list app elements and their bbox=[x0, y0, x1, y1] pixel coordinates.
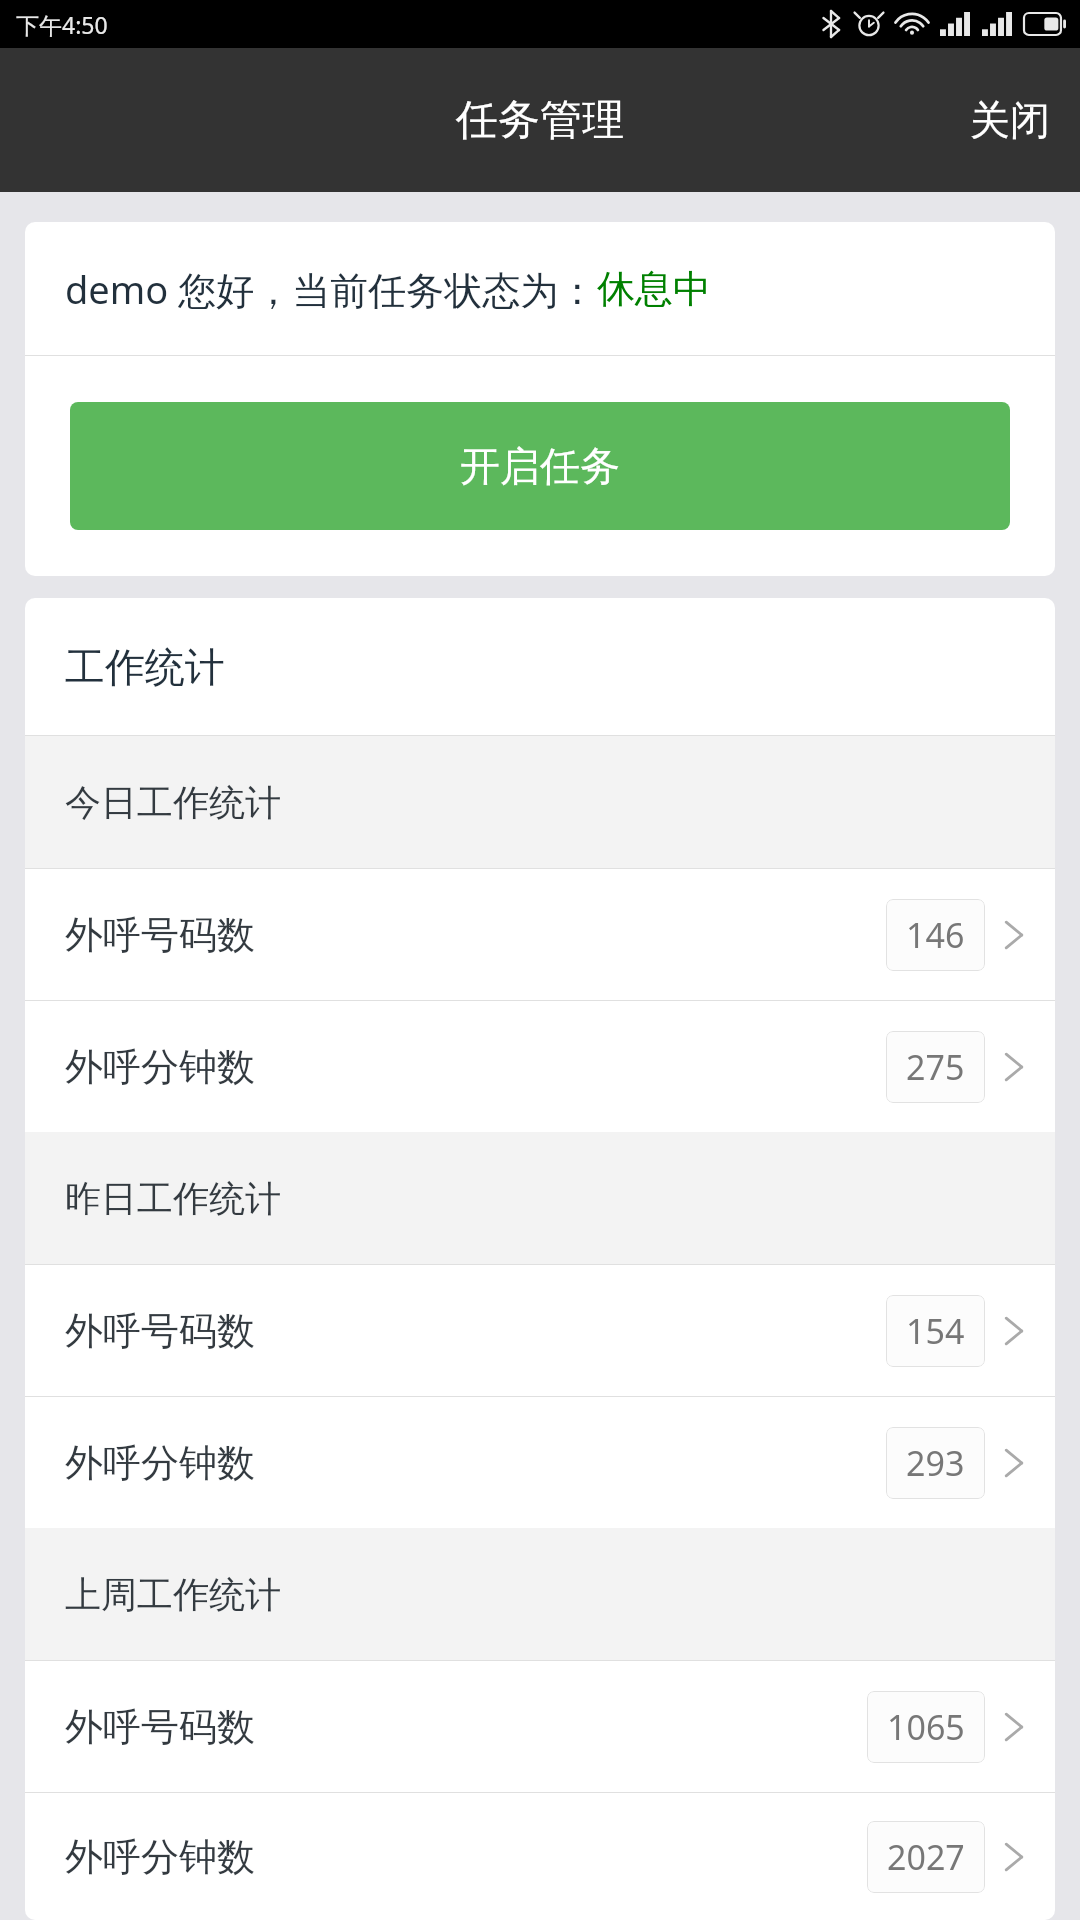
other: 查看详情 bbox=[1001, 1047, 1027, 1087]
button[interactable]: 外呼分钟数 bbox=[25, 1397, 1055, 1528]
staticText: 外呼号码数 bbox=[65, 911, 255, 959]
staticText: 下午4:50 bbox=[16, 9, 108, 40]
staticText: 154 bbox=[906, 1308, 965, 1354]
staticText: 外呼分钟数 bbox=[65, 1439, 255, 1487]
button[interactable]: 外呼号码数 bbox=[25, 1265, 1055, 1396]
staticText: 任务管理 bbox=[456, 94, 624, 147]
other: 查看详情 bbox=[1001, 1707, 1027, 1747]
staticText: 工作统计 bbox=[65, 642, 225, 692]
button[interactable]: 关闭 bbox=[940, 65, 1080, 175]
staticText: 外呼号码数 bbox=[65, 1703, 255, 1751]
staticText: 293 bbox=[906, 1440, 965, 1486]
button[interactable]: 外呼号码数 bbox=[25, 1661, 1055, 1792]
staticText: 外呼分钟数 bbox=[65, 1043, 255, 1091]
staticText: 2027 bbox=[887, 1834, 965, 1880]
staticText: 昨日工作统计 bbox=[65, 1176, 281, 1221]
staticText: 146 bbox=[906, 912, 965, 958]
staticText: 关闭 bbox=[970, 95, 1050, 145]
button[interactable]: 外呼分钟数 bbox=[25, 1001, 1055, 1132]
staticText: 休息中 bbox=[597, 265, 711, 313]
staticText: 开启任务 bbox=[460, 441, 620, 491]
button[interactable]: 开启任务 bbox=[70, 402, 1010, 530]
staticText: 1065 bbox=[887, 1704, 965, 1750]
staticText: 275 bbox=[906, 1044, 965, 1090]
button[interactable]: 外呼号码数 bbox=[25, 869, 1055, 1000]
staticText: demo 您好，当前任务状态为： bbox=[65, 263, 597, 315]
button[interactable]: 外呼分钟数 bbox=[25, 1793, 1055, 1920]
other: 查看详情 bbox=[1001, 1311, 1027, 1351]
staticText: 今日工作统计 bbox=[65, 780, 281, 825]
other: 查看详情 bbox=[1001, 915, 1027, 955]
staticText: 外呼号码数 bbox=[65, 1307, 255, 1355]
other: 查看详情 bbox=[1001, 1443, 1027, 1483]
other: 查看详情 bbox=[1001, 1837, 1027, 1877]
staticText: 上周工作统计 bbox=[65, 1572, 281, 1617]
staticText: 外呼分钟数 bbox=[65, 1833, 255, 1881]
